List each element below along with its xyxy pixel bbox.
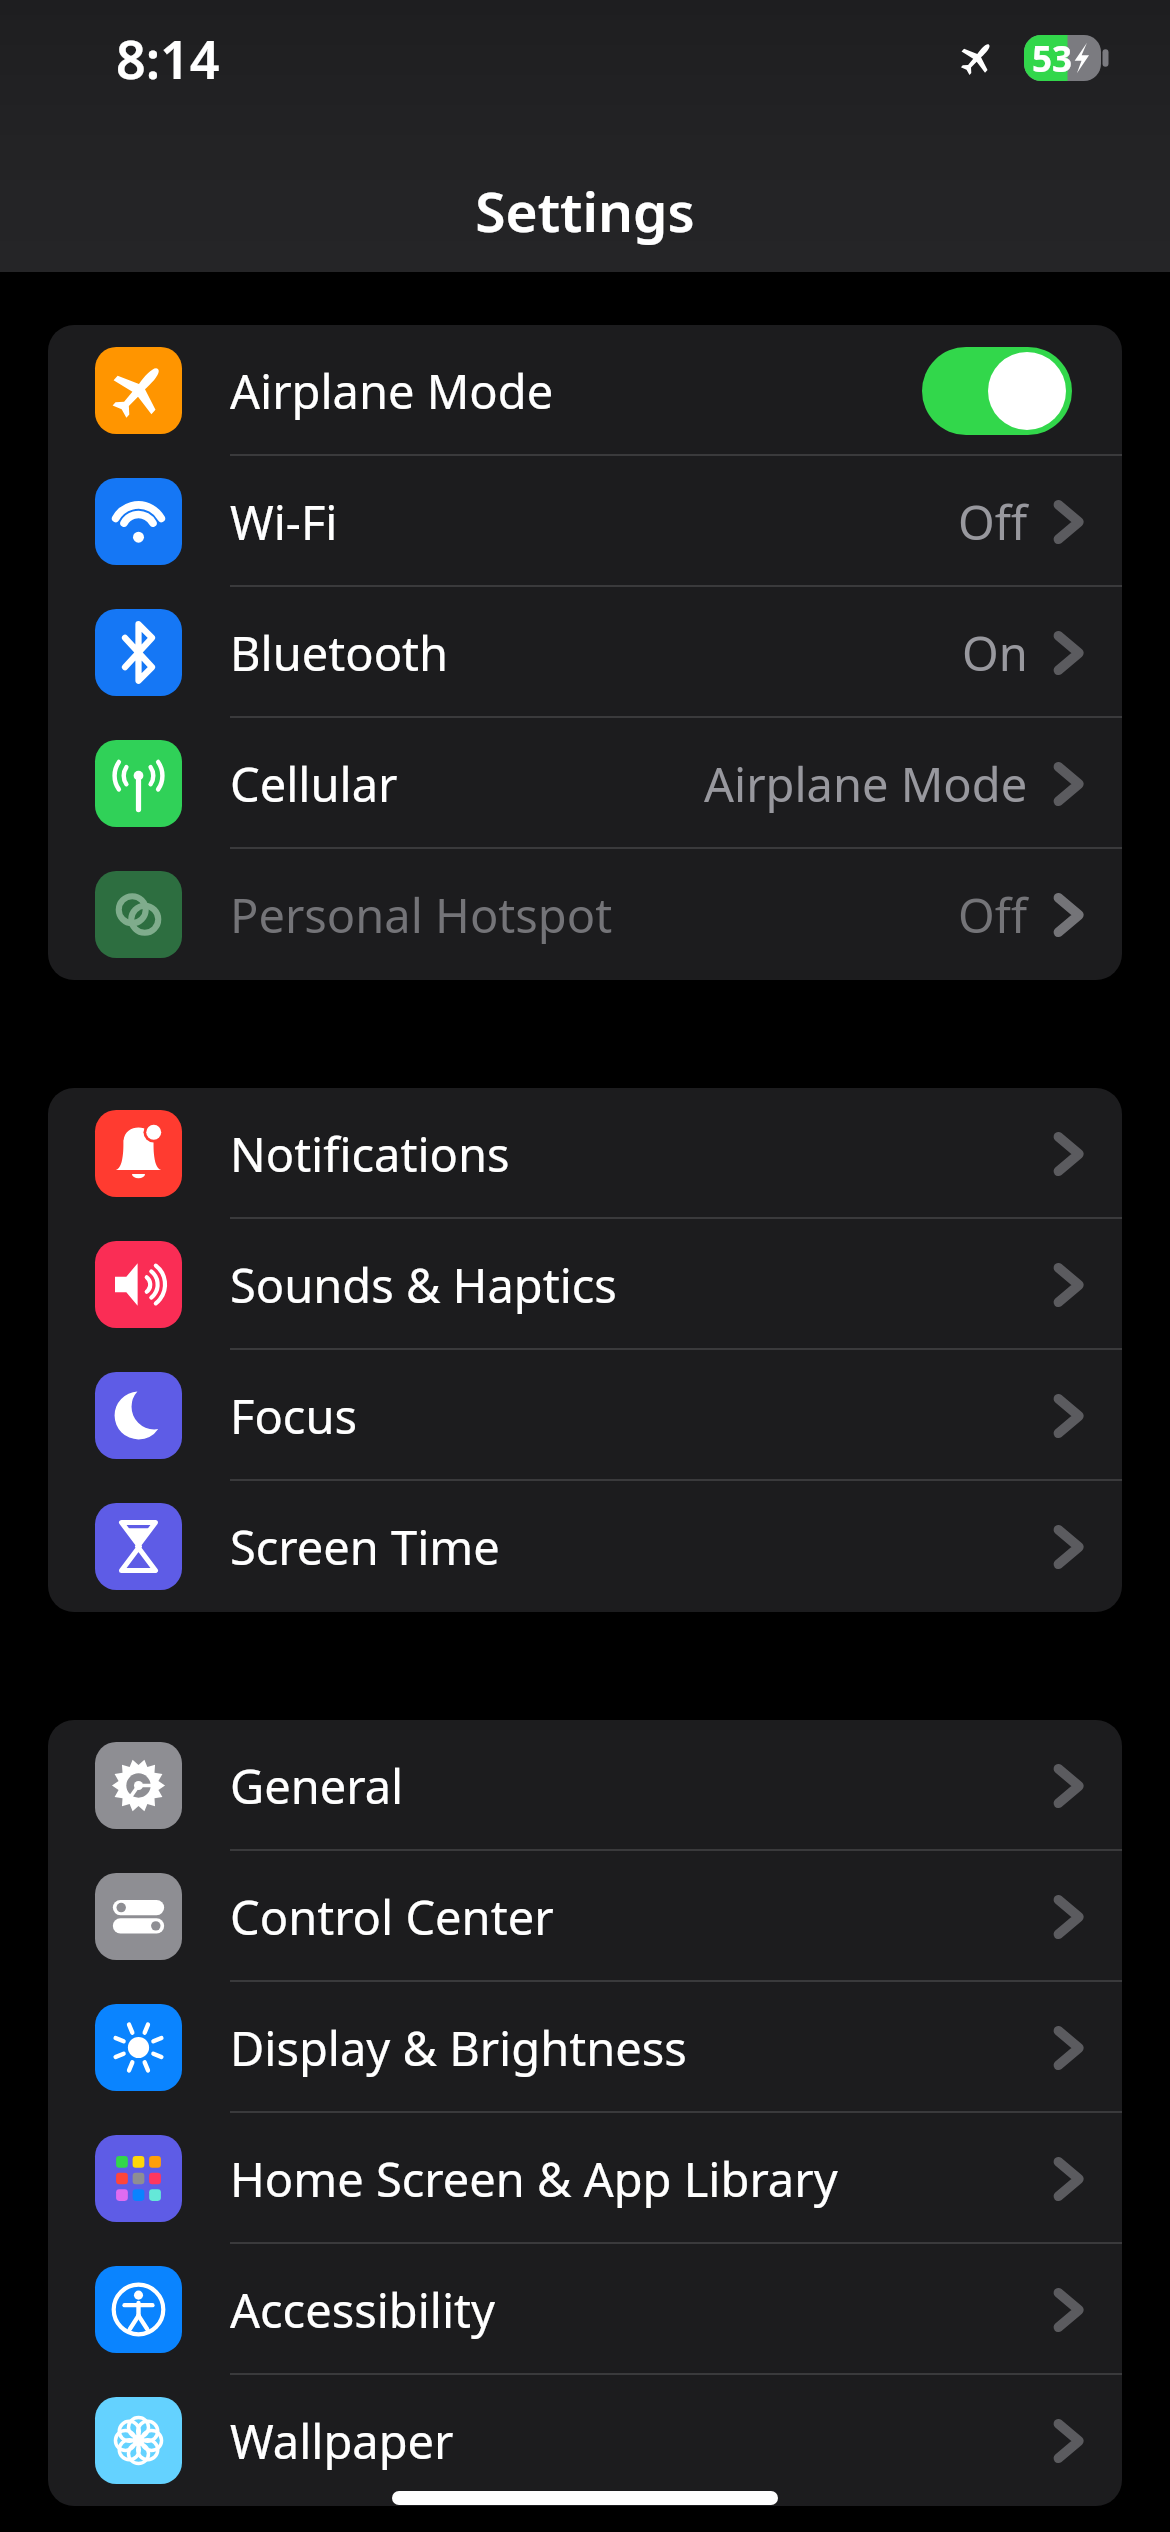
button[interactable]: Cellular [48,718,1122,849]
button[interactable]: Screen Time [48,1481,1122,1612]
button[interactable]: Sounds & Haptics [48,1219,1122,1350]
staticText: Off [958,883,1028,947]
button[interactable]: Home Screen & App Library [48,2113,1122,2244]
button[interactable]: Wallpaper [48,2375,1122,2506]
staticText: General [230,1754,404,1818]
staticText: Accessibility [230,2278,496,2342]
button[interactable]: General [48,1720,1122,1851]
button[interactable]: Focus [48,1350,1122,1481]
staticText: Wallpaper [230,2409,454,2473]
button[interactable]: Personal Hotspot [48,849,1122,980]
staticText: Airplane Mode [230,359,554,423]
staticText: Home Screen & App Library [230,2147,838,2211]
staticText: Settings [475,173,695,248]
button[interactable]: Airplane Mode toggle [922,347,1072,435]
staticText: Control Center [230,1885,554,1949]
button[interactable]: Airplane Mode [48,325,1122,456]
staticText: 8:14 [116,23,220,94]
button[interactable]: Control Center [48,1851,1122,1982]
button[interactable]: Display & Brightness [48,1982,1122,2113]
staticText: Screen Time [230,1515,500,1579]
staticText: Display & Brightness [230,2016,687,2080]
button[interactable]: Bluetooth [48,587,1122,718]
staticText: Sounds & Haptics [230,1253,617,1317]
button[interactable]: Wi-Fi [48,456,1122,587]
other: Airplane mode on [950,31,1004,85]
staticText: Airplane Mode [704,752,1028,816]
staticText: Cellular [230,752,398,816]
staticText: Focus [230,1384,357,1448]
staticText: Bluetooth [230,621,449,685]
staticText: Off [958,490,1028,554]
staticText: Personal Hotspot [230,883,613,947]
staticText: 53 [1032,35,1073,81]
button[interactable]: Notifications [48,1088,1122,1219]
staticText: Notifications [230,1122,510,1186]
button[interactable]: Accessibility [48,2244,1122,2375]
staticText: Wi-Fi [230,490,338,554]
staticText: On [962,621,1028,685]
